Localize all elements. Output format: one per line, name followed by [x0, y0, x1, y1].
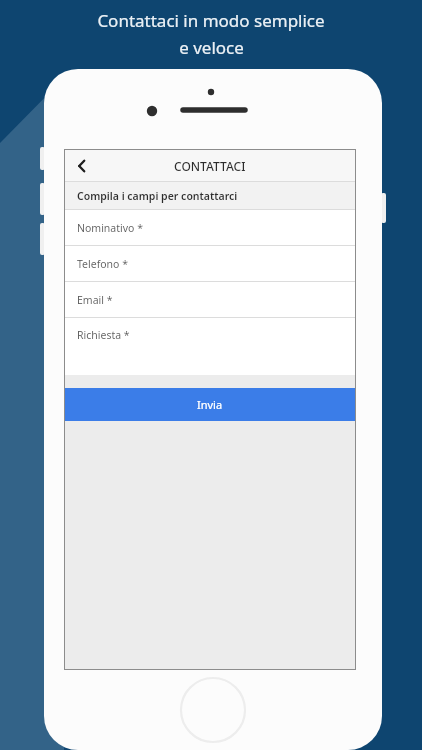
staticText: Richiesta * — [77, 328, 130, 342]
staticText: CONTATTACI — [174, 158, 246, 174]
staticText: e veloce — [179, 36, 244, 59]
staticText: Compila i campi per contattarci — [77, 189, 238, 203]
staticText: Telefono * — [77, 257, 128, 271]
button[interactable]: Nominativo * — [65, 210, 355, 245]
button[interactable]: Back — [65, 150, 99, 181]
button[interactable]: Invia — [65, 388, 355, 421]
staticText: Invia — [197, 397, 223, 412]
staticText: Contattaci in modo semplice — [97, 9, 325, 32]
button[interactable]: Telefono * — [65, 246, 355, 281]
staticText: Email * — [77, 293, 113, 307]
button[interactable]: Richiesta * — [65, 318, 355, 375]
staticText: Nominativo * — [77, 221, 143, 235]
button[interactable]: Email * — [65, 282, 355, 317]
